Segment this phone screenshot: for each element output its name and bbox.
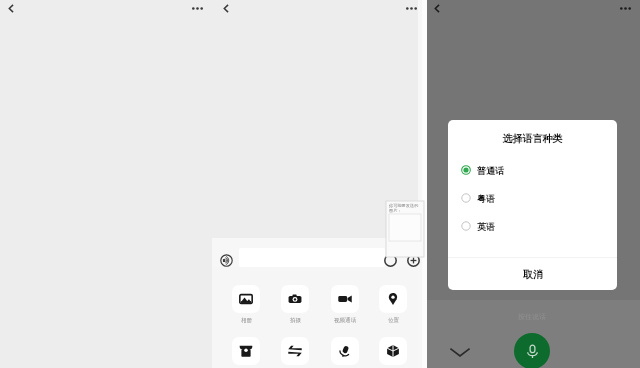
button[interactable]: 我的收藏 [372,337,414,368]
button[interactable]: Emoji [384,254,397,267]
button[interactable] [239,248,385,267]
staticText: 英语 [477,221,495,232]
button[interactable]: 语音输入 [324,337,366,368]
button[interactable]: More options [190,1,205,16]
button[interactable]: More options [618,1,633,16]
staticText: 视频通话 [334,317,356,324]
button[interactable]: 英语 [448,212,617,240]
button[interactable]: Back [431,2,444,15]
button[interactable]: More options [404,1,419,16]
button[interactable]: More [407,254,420,267]
button[interactable]: Hold to talk [514,333,550,368]
staticText: 拍摄 [290,317,301,324]
staticText: 相册 [241,317,252,324]
button[interactable]: 视频通话 [324,285,366,324]
staticText: 按住说话 [518,312,546,321]
button[interactable]: 转账 [274,337,316,368]
staticText: 你可能要发送的 图片： [389,203,419,213]
staticText: 取消 [523,268,543,281]
button[interactable]: 相册 [225,285,267,324]
button[interactable]: 普通话 [448,156,617,184]
button[interactable]: Voice input [220,254,233,267]
button[interactable]: Back [5,2,18,15]
button[interactable]: 位置 [372,285,414,324]
button[interactable]: 粤语 [448,184,617,212]
button[interactable]: 拍摄 [274,285,316,324]
staticText: 位置 [388,317,399,324]
staticText: 粤语 [477,193,495,204]
staticText: 普通话 [477,165,504,176]
staticText: 选择语言种类 [448,132,617,145]
button[interactable]: Collapse [448,341,472,365]
button[interactable]: Back [220,2,233,15]
button[interactable]: 红包 [225,337,267,368]
button[interactable]: 取消 [448,258,617,290]
